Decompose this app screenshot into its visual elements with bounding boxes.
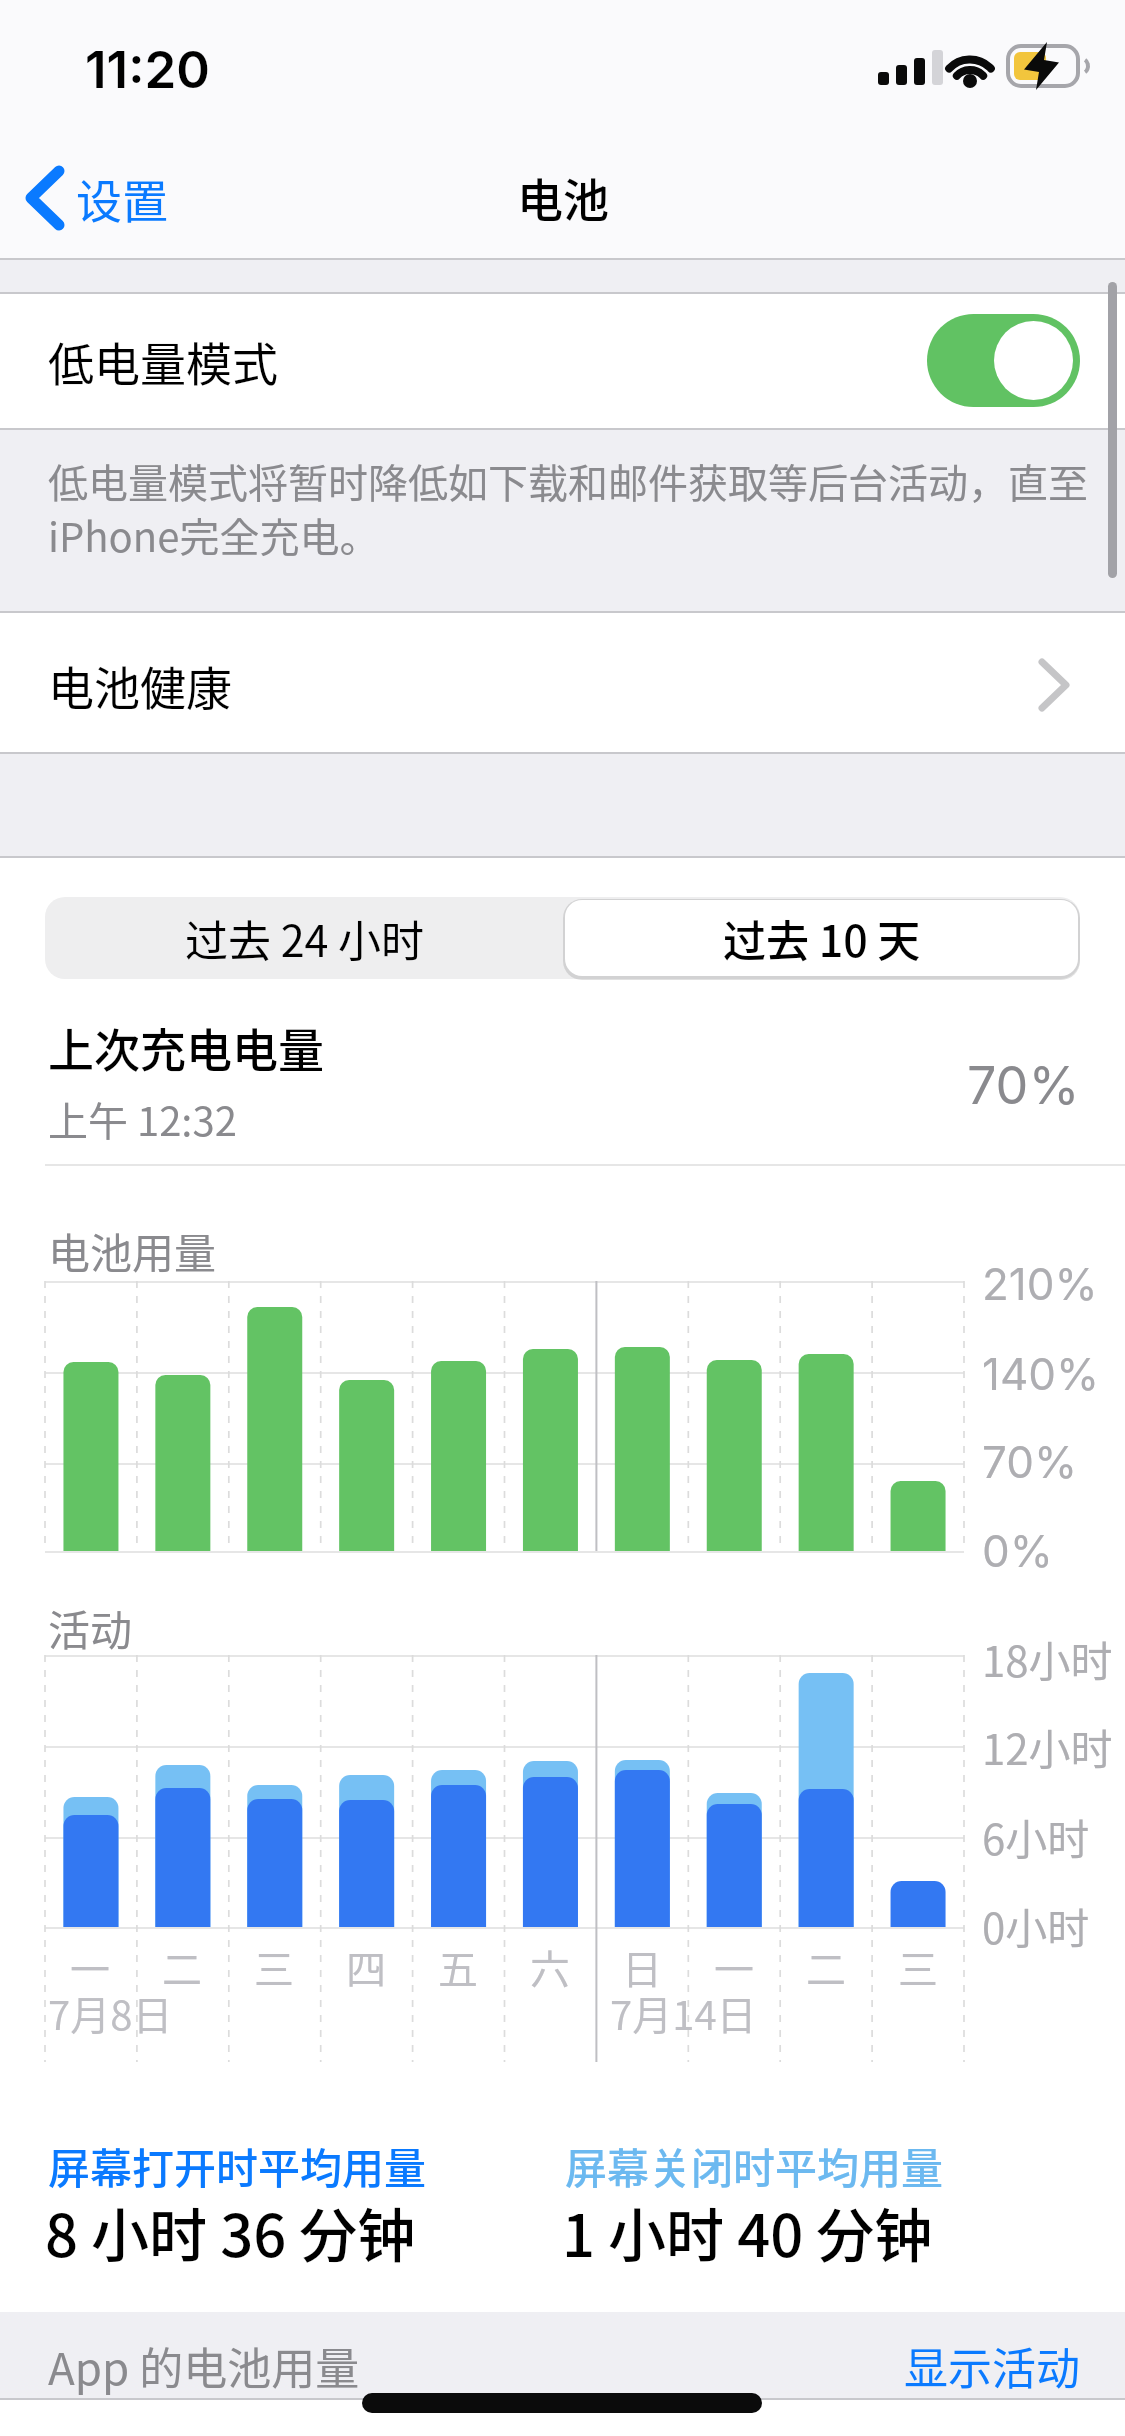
staticText: 三: [254, 1938, 294, 1996]
staticText: 上午 12:32: [48, 1090, 237, 1148]
staticText: 140%: [982, 1347, 1100, 1400]
staticText: 屏幕关闭时平均用量: [565, 2135, 944, 2196]
button[interactable]: [927, 314, 1080, 407]
staticText: 活动: [48, 1597, 133, 1658]
staticText: 二: [162, 1938, 202, 1996]
staticText: 显示活动: [904, 2334, 1080, 2398]
button[interactable]: [0, 294, 1125, 428]
staticText: 7月8日: [48, 1984, 173, 2042]
staticText: iPhone完全充电。: [48, 506, 380, 564]
staticText: 电池健康: [48, 652, 232, 719]
staticText: 0小时: [982, 1895, 1090, 1956]
staticText: 二: [806, 1938, 846, 1996]
staticText: 六: [530, 1938, 570, 1996]
staticText: 五: [438, 1938, 478, 1996]
staticText: 过去 10 天: [723, 907, 921, 969]
staticText: 0%: [982, 1524, 1053, 1577]
staticText: App 的电池用量: [48, 2334, 360, 2398]
staticText: 低电量模式将暂时降低如下载和邮件获取等后台活动，直至: [48, 452, 1088, 510]
staticText: 1 小时 40 分钟: [562, 2190, 933, 2270]
staticText: 日: [622, 1938, 662, 1996]
staticText: 电池用量: [48, 1220, 217, 1281]
button[interactable]: [565, 900, 1078, 976]
staticText: 7月14日: [610, 1984, 757, 2042]
staticText: 设置: [76, 165, 168, 232]
button[interactable]: 设置: [20, 160, 220, 236]
button[interactable]: [45, 897, 563, 979]
staticText: 电池: [517, 164, 609, 231]
staticText: 上次充电电量: [48, 1014, 324, 1081]
button[interactable]: 显示活动: [880, 2326, 1080, 2406]
staticText: 屏幕打开时平均用量: [48, 2135, 427, 2196]
staticText: 低电量模式: [48, 328, 278, 395]
staticText: 12小时: [982, 1716, 1113, 1777]
staticText: 过去 24 小时: [185, 907, 424, 969]
staticText: 一: [70, 1938, 110, 1996]
staticText: 70%: [982, 1435, 1078, 1488]
staticText: 18小时: [982, 1628, 1113, 1689]
staticText: 一: [714, 1938, 754, 1996]
staticText: 8 小时 36 分钟: [45, 2190, 416, 2270]
staticText: 6小时: [982, 1806, 1090, 1867]
staticText: 11:20: [85, 39, 210, 101]
staticText: 三: [898, 1938, 938, 1996]
button[interactable]: [0, 613, 1125, 752]
staticText: 70%: [967, 1054, 1080, 1117]
staticText: 四: [346, 1938, 386, 1996]
staticText: 210%: [982, 1257, 1098, 1310]
